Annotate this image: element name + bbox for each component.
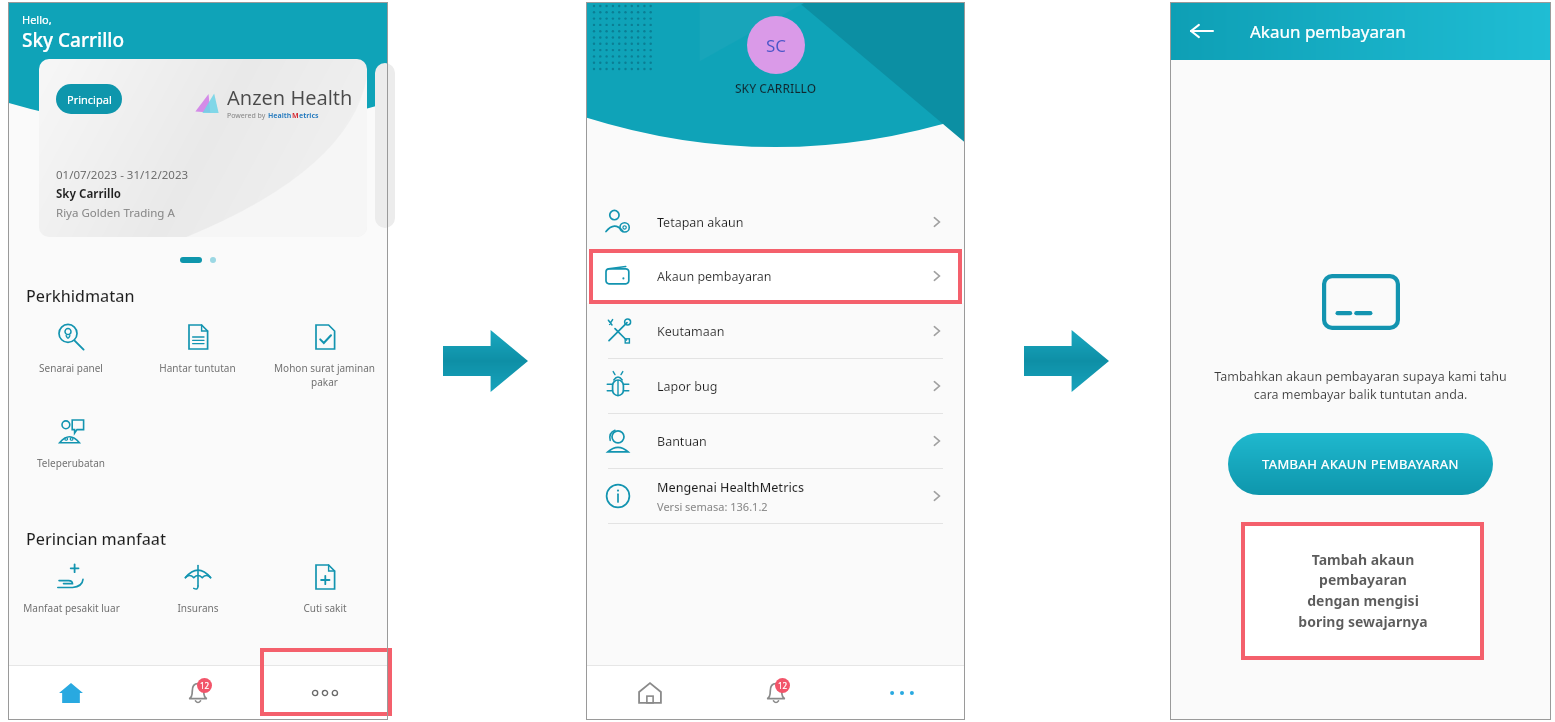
staticText: Cuti sakit	[303, 601, 347, 615]
button[interactable]: Insurans	[134, 562, 261, 615]
button[interactable]: Principal	[56, 84, 122, 114]
button[interactable]: Home	[8, 665, 134, 720]
staticText: Akaun pembayaran	[657, 268, 772, 285]
staticText: Mengenai HealthMetrics	[657, 479, 805, 496]
staticText: Sky Carrillo	[22, 27, 125, 53]
button[interactable]: More	[261, 665, 388, 720]
button[interactable]: More tab highlight	[260, 648, 392, 716]
button[interactable]: Teleperubatan	[8, 417, 134, 470]
staticText: Manfaat pesakit luar	[23, 601, 120, 615]
staticText: 12	[200, 680, 210, 691]
button[interactable]: Notifications	[134, 665, 261, 720]
button[interactable]: Cuti sakit	[261, 562, 388, 615]
staticText: Lapor bug	[657, 378, 718, 395]
staticText: Hello,	[22, 12, 52, 27]
staticText: Tambah akaun pembayaran dengan mengisi b…	[1298, 550, 1428, 632]
staticText: SKY CARRILLO	[735, 80, 817, 96]
button[interactable]: Tetapan akaun	[586, 195, 965, 249]
staticText: Teleperubatan	[37, 456, 105, 470]
staticText: Tetapan akaun	[657, 214, 744, 231]
staticText: Perkhidmatan	[26, 285, 135, 307]
staticText: Sky Carrillo	[56, 186, 122, 202]
staticText: 01/07/2023 - 31/12/2023	[56, 167, 189, 183]
button[interactable]: Hantar tuntutan	[134, 322, 261, 375]
staticText: Principal	[67, 92, 112, 107]
staticText: M	[292, 111, 299, 121]
button[interactable]: Home	[586, 665, 713, 720]
staticText: Health	[268, 111, 292, 121]
staticText: Mohon surat jaminan pakar	[274, 361, 375, 389]
button[interactable]: Mohon surat jaminan pakar	[261, 322, 388, 389]
staticText: 12	[778, 680, 788, 691]
button[interactable]: Back	[1184, 13, 1220, 49]
staticText: Versi semasa: 136.1.2	[657, 499, 768, 514]
staticText: SC	[766, 34, 787, 57]
staticText: Riya Golden Trading A	[56, 205, 175, 221]
staticText: Powered by	[227, 111, 268, 121]
button[interactable]: Keutamaan	[586, 304, 965, 358]
button[interactable]: Principal	[39, 59, 367, 237]
staticText: Insurans	[177, 601, 219, 615]
staticText: Senarai panel	[39, 361, 103, 375]
staticText: Keutamaan	[657, 323, 725, 340]
staticText: Bantuan	[657, 433, 707, 450]
button[interactable]: Notifications	[713, 665, 839, 720]
staticText: etrics	[299, 111, 319, 121]
button[interactable]: Manfaat pesakit luar	[8, 562, 134, 615]
staticText: Hantar tuntutan	[159, 361, 236, 375]
button[interactable]: Mengenai HealthMetrics	[586, 469, 965, 523]
button[interactable]: Lapor bug	[586, 359, 965, 413]
staticText: Anzen Health	[227, 84, 353, 111]
staticText: Akaun pembayaran	[1250, 20, 1406, 43]
button[interactable]: Bantuan	[586, 414, 965, 468]
button[interactable]: TAMBAH AKAUN PEMBAYARAN	[1228, 433, 1493, 495]
button[interactable]: Akaun pembayaran	[586, 249, 965, 303]
staticText: Perincian manfaat	[26, 528, 167, 550]
button[interactable]: More	[839, 665, 965, 720]
staticText: Tambahkan akaun pembayaran supaya kami t…	[1214, 368, 1507, 403]
button[interactable]: Senarai panel	[8, 322, 134, 375]
staticText: TAMBAH AKAUN PEMBAYARAN	[1262, 455, 1459, 473]
